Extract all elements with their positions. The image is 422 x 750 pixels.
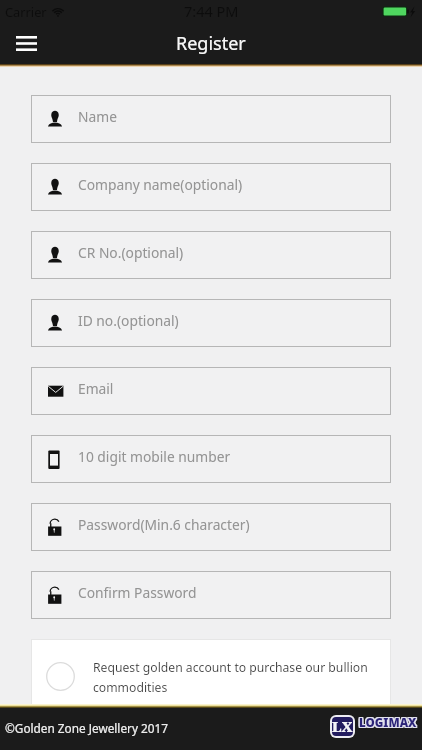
staticText: Password(Min.6 character) <box>78 515 250 534</box>
staticText: LOGIMAX <box>359 714 417 730</box>
staticText: Company name(optional) <box>78 175 243 194</box>
button[interactable]: Confirm Password <box>31 571 391 619</box>
staticText: Request golden account to purchase our b… <box>93 659 391 695</box>
staticText: LOGIMAX <box>358 714 416 730</box>
staticText: LOGIMAX <box>359 715 417 731</box>
button[interactable]: Name <box>31 95 391 143</box>
staticText: Email <box>78 379 114 398</box>
staticText: LOGIMAX <box>358 716 416 732</box>
staticText: ©Golden Zone Jewellery 2017 <box>5 720 168 736</box>
button[interactable]: Company name(optional) <box>31 163 391 211</box>
staticText: Carrier <box>5 3 47 20</box>
staticText: LOGIMAX <box>360 714 418 730</box>
button[interactable]: 10 digit mobile number <box>31 435 391 483</box>
staticText: Confirm Password <box>78 583 197 602</box>
button[interactable]: Email <box>31 367 391 415</box>
staticText: Register <box>176 31 246 56</box>
staticText: CR No.(optional) <box>78 243 184 262</box>
staticText: LOGIMAX <box>359 716 417 732</box>
staticText: LOGIMAX <box>360 716 418 732</box>
staticText: 7:44 PM <box>184 1 239 21</box>
staticText: LOGIMAX <box>358 715 416 731</box>
button[interactable]: Request golden account to purchase our b… <box>31 639 391 708</box>
button[interactable]: CR No.(optional) <box>31 231 391 279</box>
staticText: LX <box>332 717 353 735</box>
button[interactable]: Password(Min.6 character) <box>31 503 391 551</box>
staticText: 10 digit mobile number <box>78 447 231 466</box>
staticText: Name <box>78 107 117 126</box>
button[interactable]: Open navigation menu <box>10 27 42 59</box>
button[interactable]: ID no.(optional) <box>31 299 391 347</box>
staticText: LOGIMAX <box>360 715 418 731</box>
staticText: ID no.(optional) <box>78 311 179 330</box>
